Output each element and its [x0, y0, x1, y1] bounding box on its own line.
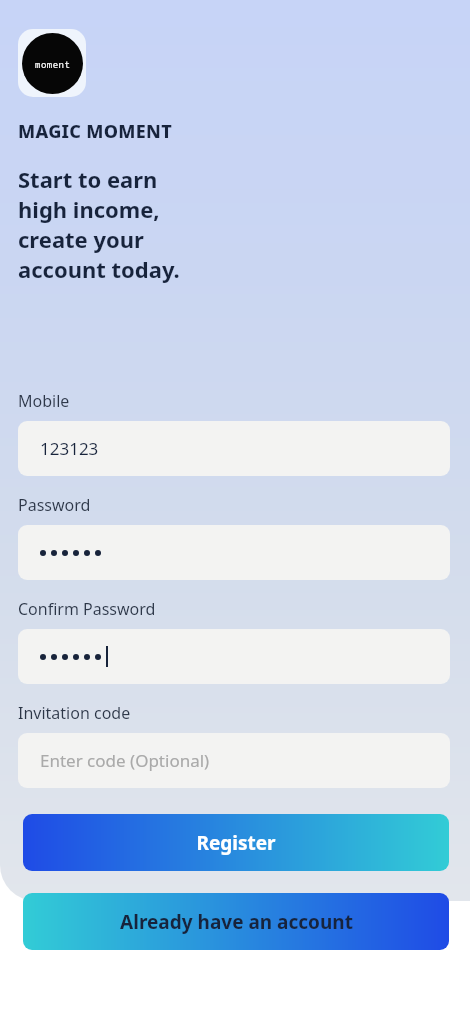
staticText: Enter code (Optional): [40, 749, 210, 772]
staticText: 123123: [40, 437, 99, 460]
staticText: Already have an account: [120, 909, 353, 935]
staticText: MAGIC MOMENT: [18, 119, 172, 144]
button[interactable]: Register: [23, 814, 449, 871]
staticText: Invitation code: [18, 702, 131, 724]
staticText: Confirm Password: [18, 598, 156, 620]
staticText: Mobile: [18, 390, 70, 412]
button[interactable]: Confirm password input: [18, 629, 450, 684]
button[interactable]: Password input: [18, 525, 450, 580]
staticText: Password: [18, 494, 91, 516]
staticText: moment: [35, 58, 71, 70]
button[interactable]: Mobile input: [18, 421, 450, 476]
staticText: Register: [196, 830, 276, 856]
button[interactable]: Invitation code input: [18, 733, 450, 788]
staticText: Start to earn high income, create your a…: [18, 164, 180, 284]
button[interactable]: Already have an account: [23, 893, 449, 950]
button[interactable]: Magic Moment logo: [18, 29, 86, 97]
